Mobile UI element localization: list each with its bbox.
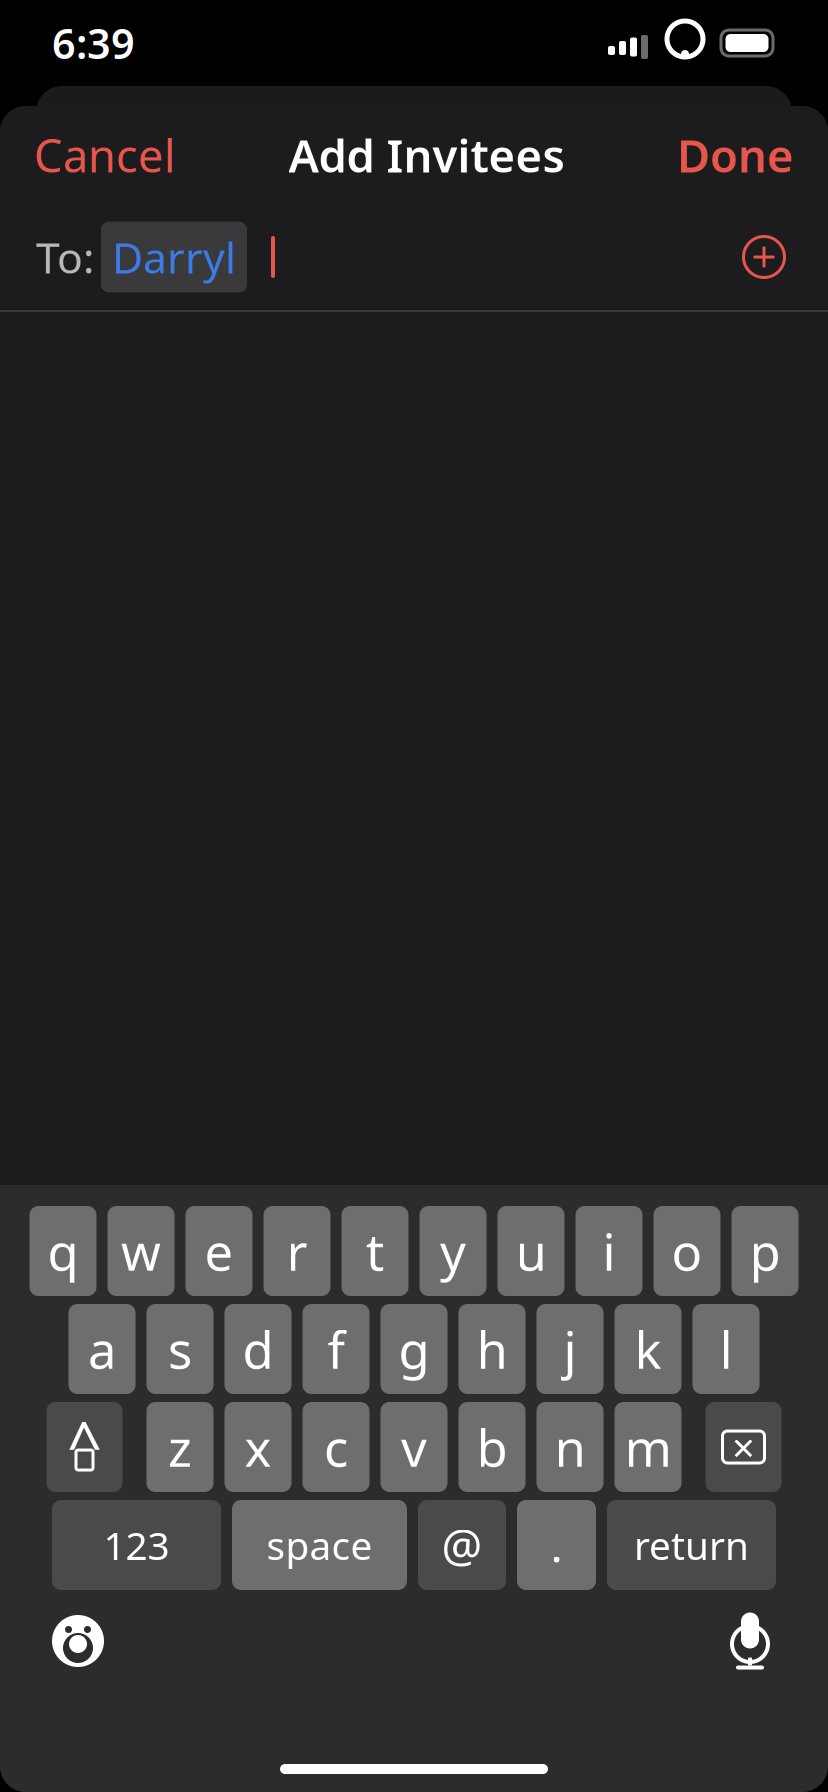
staticText: 6:39: [52, 16, 135, 70]
button[interactable]: z: [146, 1402, 213, 1492]
button[interactable]: Done: [667, 115, 804, 195]
button[interactable]: n: [536, 1402, 603, 1492]
button[interactable]: l: [692, 1304, 759, 1394]
staticText: l: [719, 1315, 732, 1383]
staticText: ×: [732, 1420, 755, 1473]
button[interactable]: m: [614, 1402, 681, 1492]
button[interactable]: o: [653, 1206, 720, 1296]
staticText: y: [440, 1217, 466, 1285]
staticText: return: [634, 1519, 749, 1571]
button[interactable]: r: [263, 1206, 330, 1296]
staticText: n: [554, 1413, 585, 1481]
button[interactable]: Cancel: [24, 115, 186, 195]
button[interactable]: v: [380, 1402, 447, 1492]
button[interactable]: u: [497, 1206, 564, 1296]
button[interactable]: return: [607, 1500, 776, 1590]
staticText: p: [749, 1217, 780, 1285]
staticText: x: [244, 1413, 271, 1481]
staticText: c: [324, 1413, 348, 1481]
button[interactable]: c: [302, 1402, 369, 1492]
staticText: m: [624, 1413, 671, 1481]
staticText: z: [168, 1413, 192, 1481]
button[interactable]: h: [458, 1304, 525, 1394]
button[interactable]: .: [517, 1500, 596, 1590]
button[interactable]: space: [232, 1500, 407, 1590]
button[interactable]: p: [731, 1206, 798, 1296]
staticText: Done: [677, 125, 794, 185]
button[interactable]: q: [29, 1206, 96, 1296]
staticText: .: [550, 1515, 562, 1575]
button[interactable]: Delete: [705, 1402, 781, 1492]
button[interactable]: s: [146, 1304, 213, 1394]
button[interactable]: b: [458, 1402, 525, 1492]
button[interactable]: i: [575, 1206, 642, 1296]
staticText: u: [515, 1217, 546, 1285]
button[interactable]: k: [614, 1304, 681, 1394]
staticText: Add Invitees: [288, 125, 564, 185]
staticText: ^: [67, 1402, 102, 1484]
staticText: w: [121, 1217, 161, 1285]
staticText: h: [476, 1315, 507, 1383]
button[interactable]: y: [419, 1206, 486, 1296]
staticText: Darryl: [112, 229, 236, 285]
staticText: d: [242, 1315, 273, 1383]
staticText: k: [634, 1315, 661, 1383]
button[interactable]: @: [418, 1500, 506, 1590]
staticText: b: [476, 1413, 507, 1481]
staticText: space: [266, 1519, 372, 1571]
staticText: o: [671, 1217, 702, 1285]
button[interactable]: d: [224, 1304, 291, 1394]
staticText: t: [366, 1217, 384, 1285]
staticText: s: [168, 1315, 192, 1383]
button[interactable]: a: [68, 1304, 135, 1394]
staticText: q: [47, 1217, 78, 1285]
button[interactable]: g: [380, 1304, 447, 1394]
staticText: r: [286, 1217, 307, 1285]
button[interactable]: f: [302, 1304, 369, 1394]
staticText: f: [327, 1315, 344, 1383]
staticText: g: [398, 1315, 429, 1383]
staticText: 123: [103, 1519, 169, 1571]
staticText: e: [204, 1217, 233, 1285]
button[interactable]: 123: [52, 1500, 221, 1590]
staticText: @: [441, 1515, 482, 1575]
button[interactable]: t: [341, 1206, 408, 1296]
button[interactable]: w: [107, 1206, 174, 1296]
button[interactable]: e: [185, 1206, 252, 1296]
button[interactable]: x: [224, 1402, 291, 1492]
staticText: j: [563, 1315, 576, 1383]
button[interactable]: Emoji: [28, 1602, 128, 1680]
button[interactable]: Shift: [46, 1402, 122, 1492]
staticText: Cancel: [34, 125, 176, 185]
button[interactable]: Add contact: [736, 229, 792, 285]
button[interactable]: j: [536, 1304, 603, 1394]
staticText: v: [401, 1413, 427, 1481]
staticText: i: [602, 1217, 615, 1285]
staticText: a: [88, 1315, 116, 1383]
staticText: To:: [36, 229, 94, 285]
button[interactable]: Dictation: [700, 1602, 800, 1680]
